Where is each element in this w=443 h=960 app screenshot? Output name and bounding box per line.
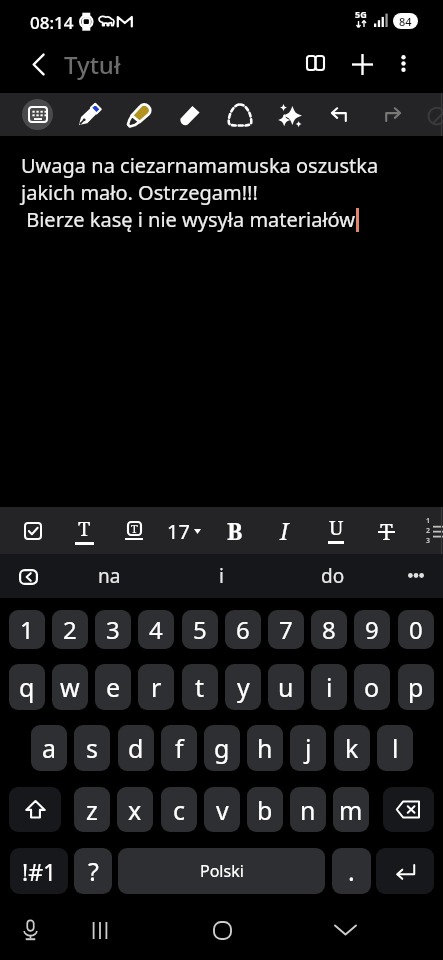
staticText: 8 bbox=[322, 613, 336, 646]
staticText: 1 bbox=[20, 613, 34, 646]
button[interactable]: T bbox=[64, 506, 104, 553]
button[interactable]: Home bbox=[197, 900, 247, 960]
button[interactable]: r bbox=[138, 664, 174, 710]
button[interactable]: do bbox=[288, 554, 378, 598]
button[interactable]: Hide keyboard bbox=[320, 900, 370, 960]
button[interactable]: w bbox=[52, 664, 88, 710]
staticText: 5G bbox=[355, 8, 367, 20]
button[interactable]: t bbox=[182, 664, 218, 710]
staticText: I bbox=[280, 515, 289, 546]
staticText: x bbox=[128, 793, 142, 827]
button[interactable]: j bbox=[290, 725, 326, 771]
staticText: q bbox=[19, 670, 35, 704]
button[interactable]: v bbox=[204, 787, 240, 832]
button[interactable]: q bbox=[9, 664, 45, 710]
button[interactable]: Pen bbox=[68, 93, 110, 136]
button[interactable]: Strikethrough bbox=[366, 509, 406, 556]
button[interactable]: y bbox=[225, 664, 261, 710]
staticText: v bbox=[216, 793, 229, 827]
button[interactable]: Enter bbox=[376, 848, 434, 894]
staticText: 0 bbox=[409, 613, 423, 646]
button[interactable]: Checklist bbox=[13, 507, 53, 554]
staticText: do bbox=[321, 563, 345, 589]
button[interactable]: a bbox=[31, 725, 67, 771]
button[interactable]: 4 bbox=[138, 610, 174, 649]
button[interactable]: Shift bbox=[9, 787, 61, 832]
button[interactable]: Microphone bbox=[8, 900, 52, 960]
staticText: d bbox=[128, 731, 144, 765]
staticText: 84 bbox=[399, 14, 412, 29]
staticText: 08:14 bbox=[30, 11, 74, 34]
staticText: 3 bbox=[106, 613, 120, 646]
button[interactable]: z bbox=[74, 787, 110, 832]
button[interactable]: Recent apps bbox=[75, 900, 125, 960]
button[interactable]: Period bbox=[332, 848, 371, 894]
button[interactable]: 6 bbox=[225, 610, 261, 649]
button[interactable]: Selection bbox=[219, 93, 261, 136]
button[interactable]: Expand toolbar bbox=[6, 555, 50, 599]
button[interactable]: i bbox=[176, 554, 266, 598]
button[interactable]: h bbox=[247, 725, 283, 771]
button[interactable]: 7 bbox=[268, 610, 304, 649]
button[interactable]: 2 bbox=[52, 610, 88, 649]
button[interactable]: Undo bbox=[320, 93, 362, 136]
button[interactable]: 8 bbox=[311, 610, 347, 649]
button[interactable]: 3 bbox=[95, 610, 131, 649]
button[interactable]: u bbox=[268, 664, 304, 710]
button[interactable]: Enhance bbox=[269, 93, 311, 136]
button[interactable]: na bbox=[64, 554, 154, 598]
staticText: T bbox=[78, 515, 91, 542]
button[interactable]: Question mark bbox=[74, 848, 112, 894]
button[interactable]: b bbox=[247, 787, 283, 832]
button[interactable]: Eraser bbox=[169, 93, 211, 136]
button[interactable]: o bbox=[354, 664, 390, 710]
staticText: u bbox=[278, 670, 294, 704]
button[interactable]: Italic bbox=[264, 507, 304, 554]
button[interactable]: x bbox=[117, 787, 153, 832]
staticText: c bbox=[173, 793, 186, 827]
staticText: 7 bbox=[279, 613, 293, 646]
staticText: s bbox=[86, 731, 98, 765]
staticText: 6 bbox=[236, 613, 250, 646]
button[interactable]: 5 bbox=[182, 610, 218, 649]
button[interactable]: More options bbox=[386, 37, 421, 90]
staticText: m bbox=[339, 793, 363, 827]
button[interactable]: Font size bbox=[160, 508, 208, 555]
button[interactable]: l bbox=[377, 725, 413, 771]
button[interactable]: 0 bbox=[398, 610, 434, 649]
staticText: e bbox=[106, 670, 121, 704]
button[interactable]: Space bbox=[118, 848, 325, 894]
button[interactable]: More suggestions bbox=[396, 553, 436, 597]
staticText: h bbox=[257, 731, 273, 765]
staticText: b bbox=[257, 793, 273, 827]
button[interactable]: n bbox=[290, 787, 326, 832]
button[interactable]: p bbox=[398, 664, 434, 710]
button[interactable]: s bbox=[74, 725, 110, 771]
button[interactable]: f bbox=[161, 725, 197, 771]
button[interactable]: Back bbox=[20, 38, 56, 91]
staticText: T bbox=[380, 518, 393, 547]
button[interactable]: d bbox=[118, 725, 154, 771]
button[interactable]: c bbox=[161, 787, 197, 832]
button[interactable]: Highlighter bbox=[118, 93, 160, 136]
staticText: 4 bbox=[149, 613, 163, 646]
button[interactable]: Text background bbox=[114, 507, 154, 554]
button[interactable]: Add bbox=[342, 38, 383, 91]
button[interactable]: U bbox=[316, 505, 356, 552]
button[interactable]: 1 bbox=[9, 610, 45, 649]
button[interactable]: Keyboard bbox=[22, 99, 53, 130]
button[interactable]: Bold bbox=[215, 507, 255, 554]
staticText: y bbox=[237, 670, 250, 704]
button[interactable]: Symbols bbox=[10, 848, 68, 894]
staticText: U bbox=[329, 514, 344, 541]
staticText: !#1 bbox=[22, 856, 57, 887]
button[interactable]: k bbox=[334, 725, 370, 771]
button[interactable]: i bbox=[311, 664, 347, 710]
button[interactable]: e bbox=[95, 664, 131, 710]
button[interactable]: Redo bbox=[370, 93, 412, 136]
button[interactable]: g bbox=[204, 725, 240, 771]
button[interactable]: 9 bbox=[354, 610, 390, 649]
button[interactable]: m bbox=[333, 787, 369, 832]
button[interactable]: Reading mode bbox=[295, 36, 336, 89]
button[interactable]: Backspace bbox=[383, 787, 434, 832]
